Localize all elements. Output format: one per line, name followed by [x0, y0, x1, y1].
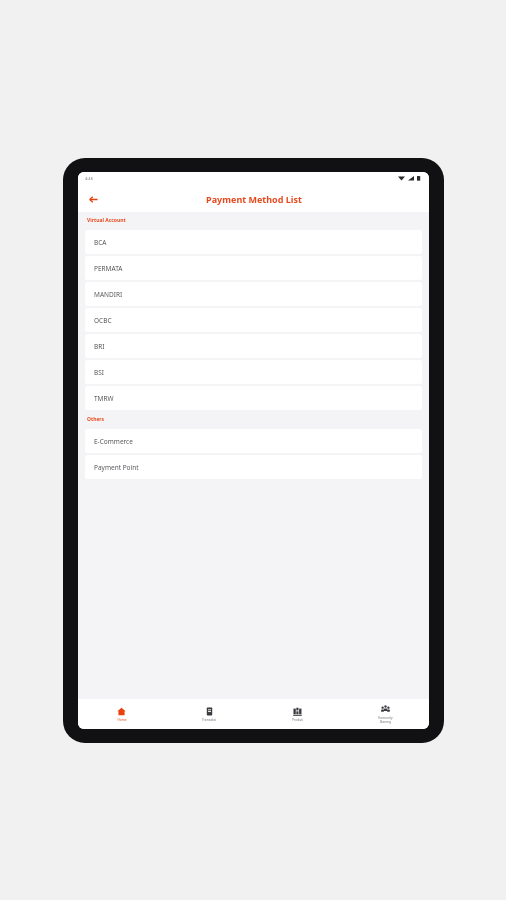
button[interactable]: MANDIRI [85, 282, 422, 306]
button[interactable]: Komunity Bareng [341, 699, 429, 729]
staticText: MANDIRI [94, 290, 123, 299]
staticText: Home [117, 718, 127, 722]
staticText: BRI [94, 342, 105, 351]
button[interactable]: Back [83, 189, 103, 209]
button[interactable]: BSI [85, 360, 422, 384]
staticText: BCA [94, 238, 107, 247]
button[interactable]: Produk [253, 699, 341, 729]
button[interactable]: BCA [85, 230, 422, 254]
button[interactable]: Home [78, 699, 165, 729]
staticText: Virtual Account [87, 217, 126, 224]
staticText: 4:46 [85, 176, 93, 181]
button[interactable]: Payment Point [85, 455, 422, 479]
staticText: TMRW [94, 394, 114, 403]
staticText: E-Commerce [94, 437, 133, 446]
button[interactable]: TMRW [85, 386, 422, 410]
button[interactable]: E-Commerce [85, 429, 422, 453]
staticText: Payment Method List [206, 193, 302, 205]
staticText: Produk [292, 718, 303, 722]
staticText: Payment Point [94, 463, 139, 472]
staticText: PERMATA [94, 264, 123, 273]
staticText: Others [87, 416, 105, 423]
staticText: BSI [94, 368, 104, 377]
staticText: Komunity Bareng [378, 716, 393, 724]
button[interactable]: Transaksi [165, 699, 253, 729]
button[interactable]: PERMATA [85, 256, 422, 280]
staticText: Transaksi [202, 718, 216, 722]
button[interactable]: OCBC [85, 308, 422, 332]
button[interactable]: BRI [85, 334, 422, 358]
staticText: OCBC [94, 316, 112, 325]
